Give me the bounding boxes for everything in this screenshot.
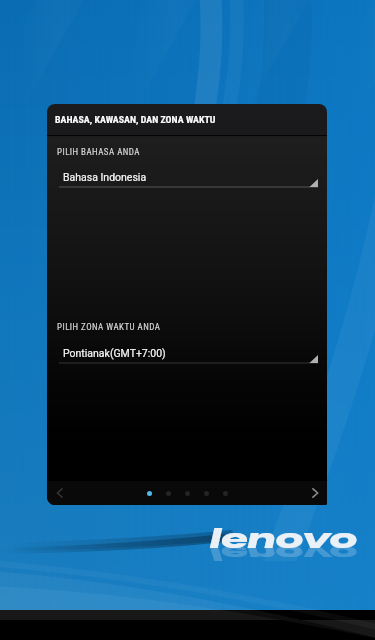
staticText: Pontianak(GMT+7:00) [63, 347, 166, 359]
staticText: PILIH ZONA WAKTU ANDA [57, 322, 161, 333]
button[interactable]: Next page [304, 482, 326, 504]
staticText: Bahasa Indonesia [63, 171, 147, 183]
staticText: lenovo [210, 541, 357, 566]
staticText: lenovo [210, 520, 357, 555]
button[interactable]: Pontianak(GMT+7:00) [59, 342, 318, 364]
button[interactable]: Bahasa Indonesia [59, 166, 318, 188]
staticText: BAHASA, KAWASAN, DAN ZONA WAKTU [55, 114, 216, 126]
staticText: PILIH BAHASA ANDA [57, 147, 140, 158]
button[interactable]: Previous page [49, 482, 71, 504]
